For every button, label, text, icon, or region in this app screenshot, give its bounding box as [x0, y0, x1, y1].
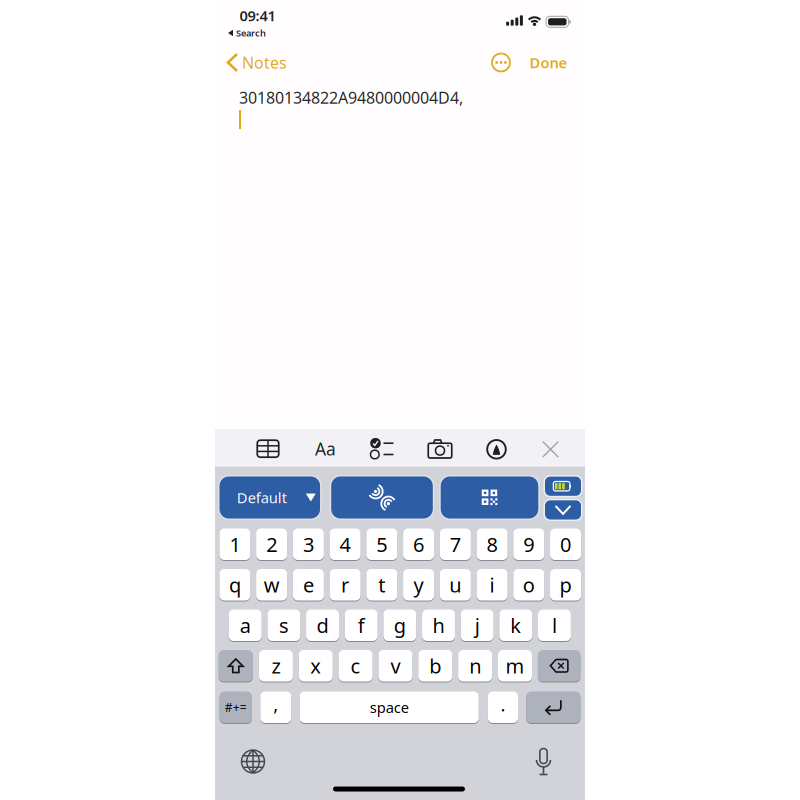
button[interactable]: h: [422, 609, 455, 641]
staticText: v: [390, 652, 400, 679]
button[interactable]: 9: [513, 528, 544, 560]
button[interactable]: n: [458, 650, 492, 681]
button[interactable]: 0: [550, 528, 581, 560]
button[interactable]: Scan: [330, 476, 433, 519]
button[interactable]: v: [378, 650, 412, 681]
staticText: space: [370, 697, 409, 717]
staticText: 6: [413, 531, 424, 558]
button[interactable]: Next keyboard: [241, 750, 264, 773]
button[interactable]: x: [299, 650, 333, 681]
staticText: #+=: [225, 699, 247, 715]
button[interactable]: Return: [526, 691, 580, 723]
button[interactable]: s: [267, 609, 300, 641]
button[interactable]: Hide keyboard: [544, 499, 582, 520]
staticText: Aa: [315, 437, 336, 460]
button[interactable]: 4: [330, 528, 361, 560]
button[interactable]: Numbers and symbols: [220, 691, 252, 723]
button[interactable]: m: [498, 650, 532, 681]
staticText: .: [500, 692, 505, 717]
button[interactable]: u: [440, 569, 471, 600]
staticText: p: [560, 571, 572, 598]
button[interactable]: Format text: [315, 437, 336, 460]
staticText: 09:41: [239, 6, 275, 25]
button[interactable]: Done: [529, 53, 567, 72]
staticText: n: [469, 652, 481, 679]
button[interactable]: Checklist: [370, 438, 394, 459]
button[interactable]: Dismiss keyboard bar: [543, 442, 558, 457]
button[interactable]: Keyboard mode: Default: [219, 476, 321, 519]
button[interactable]: Markup: [486, 439, 507, 460]
button[interactable]: d: [306, 609, 339, 641]
button[interactable]: y: [403, 569, 434, 600]
button[interactable]: q: [219, 569, 250, 600]
staticText: e: [303, 571, 314, 598]
staticText: 8: [487, 531, 498, 558]
button[interactable]: Delete: [538, 650, 580, 681]
button[interactable]: 7: [440, 528, 471, 560]
button[interactable]: e: [293, 569, 324, 600]
button[interactable]: Back to Notes: [226, 46, 310, 78]
button[interactable]: g: [383, 609, 416, 641]
staticText: ,: [273, 692, 278, 717]
staticText: f: [358, 612, 365, 639]
button[interactable]: j: [461, 609, 494, 641]
button[interactable]: 8: [477, 528, 508, 560]
staticText: Search: [236, 27, 266, 39]
staticText: a: [240, 612, 251, 639]
staticText: 7: [450, 531, 461, 558]
button[interactable]: Scanner battery: [544, 476, 582, 496]
button[interactable]: 2: [256, 528, 287, 560]
button[interactable]: Shift: [219, 650, 253, 681]
staticText: Notes: [242, 52, 287, 73]
button[interactable]: w: [256, 569, 287, 600]
button[interactable]: c: [339, 650, 373, 681]
staticText: d: [317, 612, 329, 639]
staticText: 30180134822A9480000004D4,: [239, 87, 463, 108]
button[interactable]: k: [499, 609, 532, 641]
staticText: 0: [560, 531, 571, 558]
button[interactable]: period: [488, 691, 518, 723]
button[interactable]: Insert photo: [427, 439, 452, 459]
staticText: Done: [529, 53, 567, 72]
staticText: g: [394, 612, 406, 639]
button[interactable]: f: [345, 609, 378, 641]
staticText: 9: [523, 531, 534, 558]
staticText: h: [432, 612, 444, 639]
staticText: u: [449, 571, 461, 598]
staticText: r: [341, 571, 349, 598]
button[interactable]: 3: [293, 528, 324, 560]
button[interactable]: space: [300, 691, 479, 723]
staticText: l: [552, 612, 557, 639]
button[interactable]: 6: [403, 528, 434, 560]
staticText: y: [414, 571, 424, 598]
button[interactable]: i: [477, 569, 508, 600]
staticText: s: [279, 612, 289, 639]
button[interactable]: p: [550, 569, 581, 600]
button[interactable]: More options: [491, 52, 511, 72]
button[interactable]: b: [418, 650, 452, 681]
staticText: 1: [229, 531, 240, 558]
button[interactable]: comma: [260, 691, 291, 723]
staticText: b: [429, 652, 441, 679]
button[interactable]: t: [366, 569, 397, 600]
staticText: k: [510, 612, 521, 639]
button[interactable]: l: [538, 609, 571, 641]
button[interactable]: Insert table: [256, 437, 280, 461]
button[interactable]: r: [330, 569, 361, 600]
staticText: m: [505, 652, 524, 679]
staticText: 4: [340, 531, 351, 558]
staticText: o: [523, 571, 535, 598]
button[interactable]: Dictation: [536, 748, 550, 774]
button[interactable]: 1: [219, 528, 250, 560]
button[interactable]: o: [513, 569, 544, 600]
staticText: t: [378, 571, 385, 598]
button[interactable]: Scan QR code: [440, 476, 539, 519]
button[interactable]: z: [259, 650, 293, 681]
staticText: Default: [237, 488, 287, 507]
staticText: w: [264, 571, 280, 598]
staticText: i: [490, 571, 495, 598]
staticText: 5: [376, 531, 387, 558]
button[interactable]: 5: [366, 528, 397, 560]
staticText: x: [310, 652, 321, 679]
button[interactable]: a: [229, 609, 262, 641]
